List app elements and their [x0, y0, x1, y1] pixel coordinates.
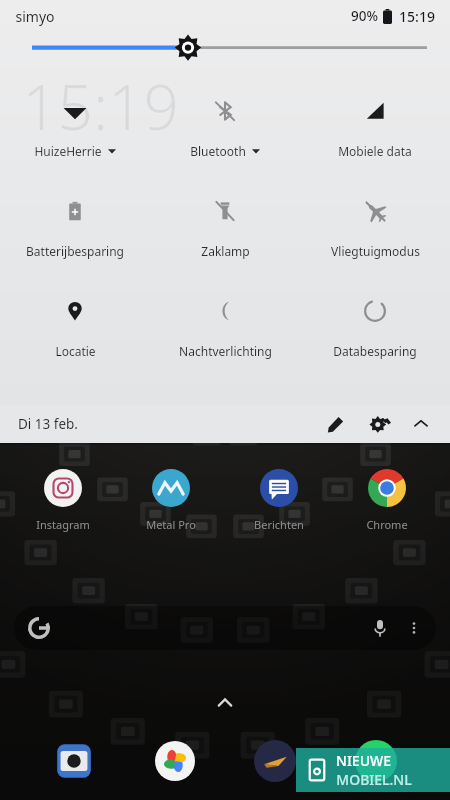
staticText: Databesparing [333, 343, 417, 359]
button[interactable]: Collapse [406, 409, 436, 439]
staticText: Nachtverlichting [179, 343, 272, 359]
staticText: Chrome [366, 517, 408, 532]
staticText: Locatie [55, 343, 96, 359]
button[interactable]: Instagram [18, 465, 108, 534]
button[interactable]: Mobiele data [300, 88, 450, 188]
button[interactable]: Edit tiles [320, 409, 350, 439]
button[interactable]: Settings [364, 408, 396, 440]
button[interactable]: Compass [249, 735, 301, 787]
button[interactable]: Zaklamp [150, 188, 300, 288]
staticText: simyo [15, 7, 55, 26]
staticText: Bluetooth [190, 143, 246, 159]
button[interactable]: Locatie [0, 288, 150, 388]
staticText: 15:19 [22, 64, 179, 148]
staticText: NIEUWE [336, 751, 391, 770]
staticText: Batterijbesparing [26, 243, 124, 259]
button[interactable]: Open app drawer [212, 690, 238, 716]
button[interactable]: Batterijbesparing [0, 188, 150, 288]
button[interactable]: Chrome [342, 465, 432, 534]
button[interactable]: Camera [48, 735, 100, 787]
button[interactable]: WhatsApp [350, 735, 402, 787]
staticText: MOBIEL.NL [336, 770, 412, 789]
staticText: HuizeHerrie [34, 143, 102, 159]
button[interactable]: HuizeHerrie [0, 88, 150, 188]
other: Google Search [28, 617, 50, 639]
other: More options [406, 620, 422, 636]
staticText: Zaklamp [201, 243, 250, 259]
staticText: 15:19 [399, 7, 435, 26]
button[interactable]: Brightness [0, 32, 450, 62]
button[interactable]: Berichten [234, 465, 324, 534]
staticText: Vliegtuigmodus [331, 243, 420, 259]
button[interactable]: Metal Pro [126, 465, 216, 534]
button[interactable]: Google Search [14, 606, 436, 650]
button[interactable]: Photos [149, 735, 201, 787]
staticText: Metal Pro [146, 517, 196, 532]
staticText: Di 13 feb. [18, 415, 78, 433]
button[interactable]: Databesparing [300, 288, 450, 388]
staticText: Mobiele data [338, 143, 412, 159]
other: Voice search [370, 618, 390, 638]
staticText: 90% [351, 7, 378, 25]
button[interactable]: Nachtverlichting [150, 288, 300, 388]
staticText: Instagram [36, 517, 90, 532]
button[interactable]: Bluetooth [150, 88, 300, 188]
staticText: Berichten [254, 517, 304, 532]
button[interactable]: Vliegtuigmodus [300, 188, 450, 288]
